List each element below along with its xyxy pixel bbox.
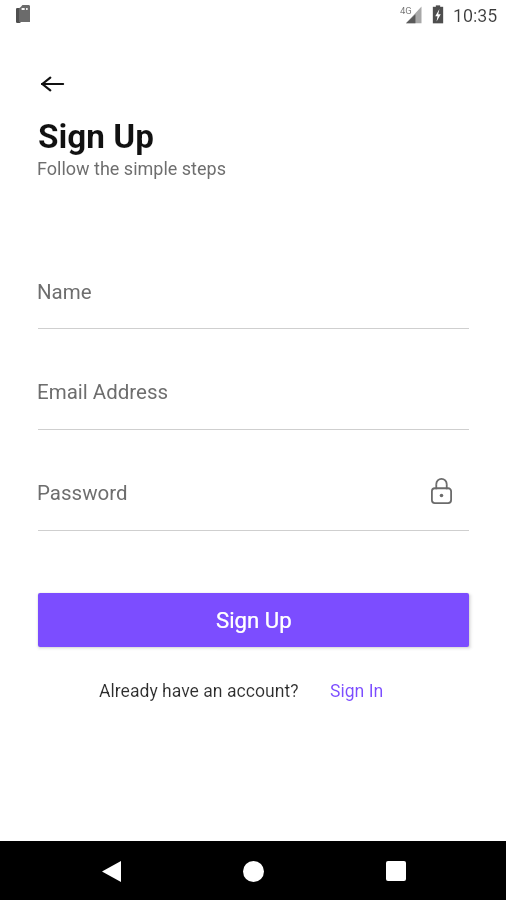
button[interactable]: Recents <box>372 847 420 895</box>
button[interactable]: Email Address <box>38 368 469 431</box>
button[interactable]: Name <box>38 268 469 330</box>
button[interactable]: Sign In <box>330 681 384 702</box>
staticText: 4G <box>400 5 412 16</box>
button[interactable]: Back <box>87 847 135 895</box>
button[interactable]: Back <box>30 62 74 106</box>
button[interactable]: Show password <box>419 468 463 514</box>
staticText: Sign Up <box>216 607 292 633</box>
button[interactable]: Password <box>38 469 469 532</box>
button[interactable]: Sign Up <box>38 593 469 647</box>
staticText: Email Address <box>37 380 169 404</box>
staticText: Sign Up <box>38 117 154 156</box>
staticText: Password <box>37 481 128 505</box>
staticText: 10:35 <box>453 5 498 26</box>
staticText: Follow the simple steps <box>37 158 226 179</box>
staticText: Name <box>37 280 92 304</box>
staticText: Already have an account? <box>99 681 299 702</box>
button[interactable]: Home <box>229 847 277 895</box>
staticText: Sign In <box>330 681 384 702</box>
